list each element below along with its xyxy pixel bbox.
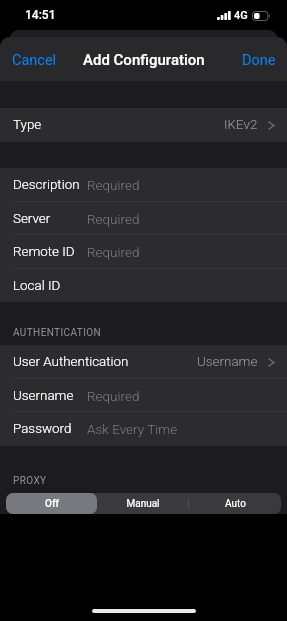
staticText: Auto	[225, 498, 246, 510]
staticText: Local ID	[13, 278, 61, 294]
button[interactable]: Username	[0, 379, 287, 412]
button[interactable]: Server	[0, 202, 287, 235]
button[interactable]: Manual	[97, 493, 189, 514]
staticText: User Authentication	[13, 354, 129, 370]
button[interactable]: Remote ID	[0, 235, 287, 269]
button[interactable]: Local ID	[0, 269, 287, 302]
staticText: 14:51	[25, 8, 56, 22]
button[interactable]: Description	[0, 168, 287, 202]
button[interactable]: Auto	[189, 493, 281, 514]
staticText: Required	[87, 211, 140, 227]
staticText: Required	[87, 388, 140, 404]
staticText: 4G	[234, 9, 248, 22]
button[interactable]: Cancel	[0, 41, 69, 78]
button[interactable]: Type	[0, 108, 287, 142]
staticText: Ask Every Time	[87, 421, 178, 437]
staticText: Required	[87, 177, 140, 193]
staticText: Manual	[126, 498, 160, 510]
staticText: IKEv2	[224, 117, 258, 133]
staticText: Required	[87, 244, 140, 260]
staticText: PROXY	[13, 475, 47, 487]
staticText: Description	[13, 177, 80, 193]
staticText: Password	[13, 421, 72, 437]
staticText: Add Configuration	[83, 51, 205, 69]
staticText: Username	[197, 354, 258, 370]
button[interactable]: User Authentication	[0, 345, 287, 379]
staticText: Type	[13, 117, 42, 133]
staticText: Cancel	[12, 52, 57, 69]
button[interactable]: Done	[230, 41, 287, 78]
button[interactable]: Off	[6, 493, 97, 514]
staticText: Done	[242, 52, 276, 69]
staticText: Off	[45, 498, 59, 510]
staticText: AUTHENTICATION	[13, 327, 102, 339]
staticText: Server	[13, 211, 51, 227]
button[interactable]: Password	[0, 412, 287, 446]
staticText: Remote ID	[13, 244, 75, 260]
staticText: Username	[13, 388, 74, 404]
